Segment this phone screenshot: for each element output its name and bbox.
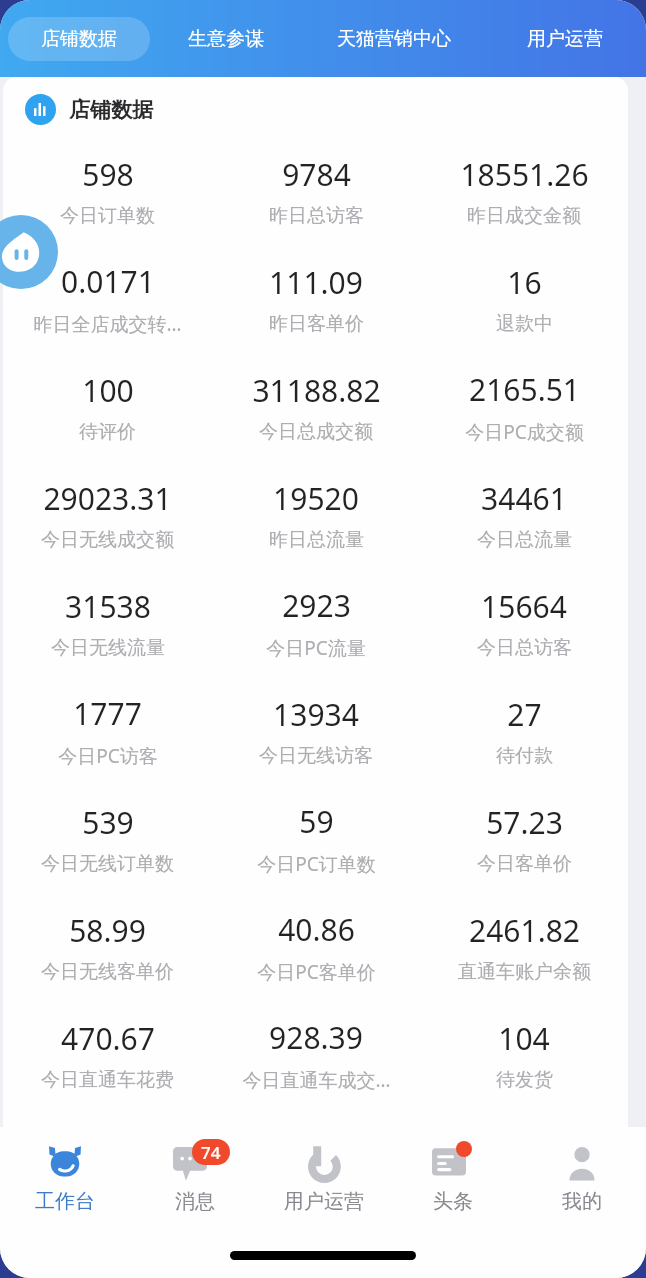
staticText: 598 (82, 154, 134, 195)
button[interactable]: 工作台 (0, 1139, 130, 1214)
staticText: 111.09 (269, 262, 363, 303)
button[interactable]: 57.23 (420, 785, 628, 893)
staticText: 待发货 (496, 1068, 553, 1092)
staticText: 100 (82, 370, 134, 411)
button[interactable]: 我的 (517, 1139, 646, 1214)
button[interactable]: 74 (130, 1139, 259, 1214)
staticText: 2461.82 (469, 910, 580, 951)
button[interactable]: 111.09 (212, 245, 420, 353)
button[interactable]: 15664 (420, 569, 628, 677)
button[interactable]: 头条 (388, 1139, 517, 1214)
button[interactable]: 2923 (212, 569, 420, 677)
staticText: 0.0171 (61, 261, 155, 302)
staticText: 74 (201, 1141, 221, 1164)
button[interactable]: 18551.26 (420, 137, 628, 245)
button[interactable]: 34461 (420, 461, 628, 569)
staticText: 直通车账户余额 (458, 960, 591, 984)
staticText: 31188.82 (252, 370, 381, 411)
staticText: 今日PC客单价 (257, 959, 376, 985)
staticText: 昨日总流量 (269, 528, 364, 552)
staticText: 昨日全店成交转… (33, 311, 182, 337)
button[interactable]: 用户运营 (259, 1139, 388, 1214)
staticText: 消息 (175, 1189, 215, 1214)
staticText: 16 (507, 262, 542, 303)
staticText: 今日PC流量 (266, 635, 366, 661)
staticText: 29023.31 (43, 478, 172, 519)
staticText: 2165.51 (469, 369, 580, 410)
staticText: 生意参谋 (188, 27, 264, 51)
staticText: 57.23 (486, 802, 563, 843)
staticText: 今日总访客 (477, 636, 572, 660)
staticText: 18551.26 (460, 154, 589, 195)
button[interactable]: 用户运营 (491, 17, 638, 61)
button[interactable]: 31538 (3, 569, 212, 677)
button[interactable]: 19520 (212, 461, 420, 569)
button[interactable]: 100 (3, 353, 212, 461)
staticText: 15664 (481, 586, 567, 627)
button[interactable]: 1777 (3, 677, 212, 785)
staticText: 40.86 (278, 909, 355, 950)
staticText: 1777 (73, 693, 142, 734)
staticText: 头条 (433, 1189, 473, 1214)
staticText: 今日PC订单数 (257, 851, 376, 877)
staticText: 昨日总访客 (269, 204, 364, 228)
button[interactable]: 59 (212, 785, 420, 893)
staticText: 用户运营 (527, 27, 603, 51)
staticText: 19520 (273, 478, 359, 519)
staticText: 今日客单价 (477, 852, 572, 876)
staticText: 13934 (273, 694, 359, 735)
staticText: 今日无线访客 (259, 744, 373, 768)
staticText: 2923 (282, 585, 351, 626)
button[interactable]: 天猫营销中心 (302, 17, 485, 61)
button[interactable]: 40.86 (212, 893, 420, 1001)
button[interactable]: 0.0171 (3, 245, 212, 353)
button[interactable]: 2165.51 (420, 353, 628, 461)
button[interactable]: 928.39 (212, 1001, 420, 1109)
staticText: 今日无线订单数 (41, 852, 174, 876)
staticText: 539 (82, 802, 134, 843)
staticText: 27 (507, 694, 542, 735)
button[interactable]: 9784 (212, 137, 420, 245)
button[interactable]: 2461.82 (420, 893, 628, 1001)
button[interactable]: 店铺数据 (25, 94, 628, 125)
staticText: 今日PC成交额 (465, 419, 584, 445)
button[interactable]: 598 (3, 137, 212, 245)
staticText: 今日PC访客 (58, 743, 158, 769)
button[interactable]: 58.99 (3, 893, 212, 1001)
button[interactable]: 539 (3, 785, 212, 893)
staticText: 34461 (481, 478, 567, 519)
button[interactable]: 智能助理 (0, 215, 58, 289)
staticText: 59 (299, 801, 334, 842)
staticText: 昨日客单价 (269, 312, 364, 336)
staticText: 今日无线流量 (51, 636, 165, 660)
staticText: 工作台 (35, 1189, 95, 1214)
staticText: 用户运营 (284, 1189, 364, 1214)
button[interactable]: 27 (420, 677, 628, 785)
staticText: 928.39 (269, 1017, 363, 1058)
button[interactable]: 13934 (212, 677, 420, 785)
button[interactable]: 16 (420, 245, 628, 353)
staticText: 今日直通车花费 (41, 1068, 174, 1092)
staticText: 58.99 (69, 910, 146, 951)
button[interactable]: 生意参谋 (156, 17, 296, 61)
staticText: 今日总流量 (477, 528, 572, 552)
staticText: 店铺数据 (69, 97, 153, 123)
staticText: 天猫营销中心 (337, 27, 451, 51)
staticText: 退款中 (496, 312, 553, 336)
staticText: 待付款 (496, 744, 553, 768)
button[interactable]: 31188.82 (212, 353, 420, 461)
button[interactable]: 店铺数据 (8, 17, 150, 61)
staticText: 今日无线成交额 (41, 528, 174, 552)
button[interactable]: 104 (420, 1001, 628, 1109)
staticText: 昨日成交金额 (467, 204, 581, 228)
staticText: 我的 (562, 1189, 602, 1214)
staticText: 今日总成交额 (259, 420, 373, 444)
staticText: 今日无线客单价 (41, 960, 174, 984)
button[interactable]: 29023.31 (3, 461, 212, 569)
staticText: 今日直通车成交… (242, 1067, 391, 1093)
button[interactable]: 470.67 (3, 1001, 212, 1109)
staticText: 470.67 (61, 1018, 155, 1059)
staticText: 待评价 (79, 420, 136, 444)
staticText: 店铺数据 (41, 27, 117, 51)
staticText: 9784 (282, 154, 351, 195)
